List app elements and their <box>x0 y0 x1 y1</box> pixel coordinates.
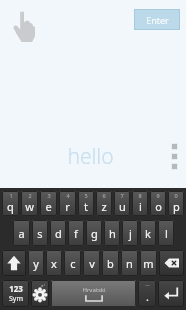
staticText: . <box>146 289 149 304</box>
staticText: 1 <box>9 192 13 199</box>
button[interactable]: f <box>68 220 84 246</box>
button[interactable]: g <box>86 220 102 246</box>
button[interactable]: c <box>64 250 81 276</box>
button[interactable]: Hrvatski <box>51 280 136 307</box>
staticText: 9 <box>156 192 160 199</box>
staticText: j <box>129 226 132 241</box>
other: Pointer <box>12 11 36 43</box>
staticText: r <box>65 199 70 214</box>
staticText: 7 <box>120 192 124 199</box>
button[interactable]: 7 <box>114 191 130 216</box>
button[interactable]: 8 <box>132 191 148 216</box>
staticText: 2 <box>28 192 32 199</box>
button[interactable]: h <box>104 220 120 246</box>
staticText: w <box>25 199 34 214</box>
button[interactable]: x <box>46 250 62 276</box>
staticText: 0 <box>174 192 178 199</box>
staticText: q <box>7 199 14 214</box>
staticText: b <box>107 256 114 271</box>
staticText: l <box>165 226 168 241</box>
button[interactable]: 6 <box>96 191 112 216</box>
button[interactable]: Enter <box>158 280 184 307</box>
button[interactable]: Settings <box>31 280 49 307</box>
button[interactable]: Enter <box>134 9 180 30</box>
button[interactable]: 1 <box>2 191 19 216</box>
button[interactable]: 3 <box>40 191 57 216</box>
button[interactable]: 2 <box>21 191 38 216</box>
button[interactable]: j <box>122 220 138 246</box>
staticText: Hrvatski <box>82 286 106 294</box>
staticText: z <box>101 199 107 214</box>
staticText: 6 <box>102 192 106 199</box>
button[interactable]: m <box>140 250 157 276</box>
button[interactable]: 5 <box>78 191 94 216</box>
staticText: v <box>89 256 95 271</box>
staticText: Sym <box>9 294 23 304</box>
button[interactable]: k <box>140 220 156 246</box>
staticText: h <box>109 226 116 241</box>
staticText: u <box>119 199 126 214</box>
button[interactable]: 4 <box>59 191 76 216</box>
button[interactable]: 9 <box>150 191 166 216</box>
staticText: n <box>126 256 133 271</box>
staticText: 123 <box>9 283 23 294</box>
staticText: p <box>173 199 180 214</box>
button[interactable]: 0 <box>168 191 184 216</box>
staticText: hello <box>67 142 114 171</box>
staticText: m <box>143 256 154 271</box>
button[interactable]: a <box>13 220 30 246</box>
staticText: 5 <box>84 192 88 199</box>
staticText: t <box>84 199 88 214</box>
staticText: f <box>74 226 78 241</box>
staticText: s <box>37 226 43 241</box>
staticText: ··· <box>145 281 150 288</box>
button[interactable]: Backspace <box>159 250 184 276</box>
staticText: o <box>155 199 162 214</box>
staticText: x <box>51 256 57 271</box>
staticText: d <box>55 226 62 241</box>
button[interactable]: s <box>32 220 48 246</box>
button[interactable]: d <box>50 220 66 246</box>
staticText: y <box>33 256 39 271</box>
button[interactable]: b <box>102 250 119 276</box>
button[interactable]: ··· <box>138 280 156 307</box>
staticText: 8 <box>138 192 142 199</box>
button[interactable]: More options <box>167 140 181 172</box>
staticText: e <box>45 199 52 214</box>
staticText: a <box>18 226 25 241</box>
button[interactable]: v <box>83 250 100 276</box>
button[interactable]: y <box>28 250 44 276</box>
staticText: g <box>91 226 98 241</box>
staticText: Enter <box>146 14 169 26</box>
staticText: i <box>139 199 142 214</box>
staticText: c <box>70 256 76 271</box>
staticText: 4 <box>66 192 70 199</box>
staticText: 3 <box>47 192 51 199</box>
button[interactable]: n <box>121 250 138 276</box>
staticText: k <box>145 226 151 241</box>
button[interactable]: Shift <box>2 250 26 276</box>
button[interactable]: 123 <box>2 280 29 307</box>
button[interactable]: l <box>158 220 174 246</box>
